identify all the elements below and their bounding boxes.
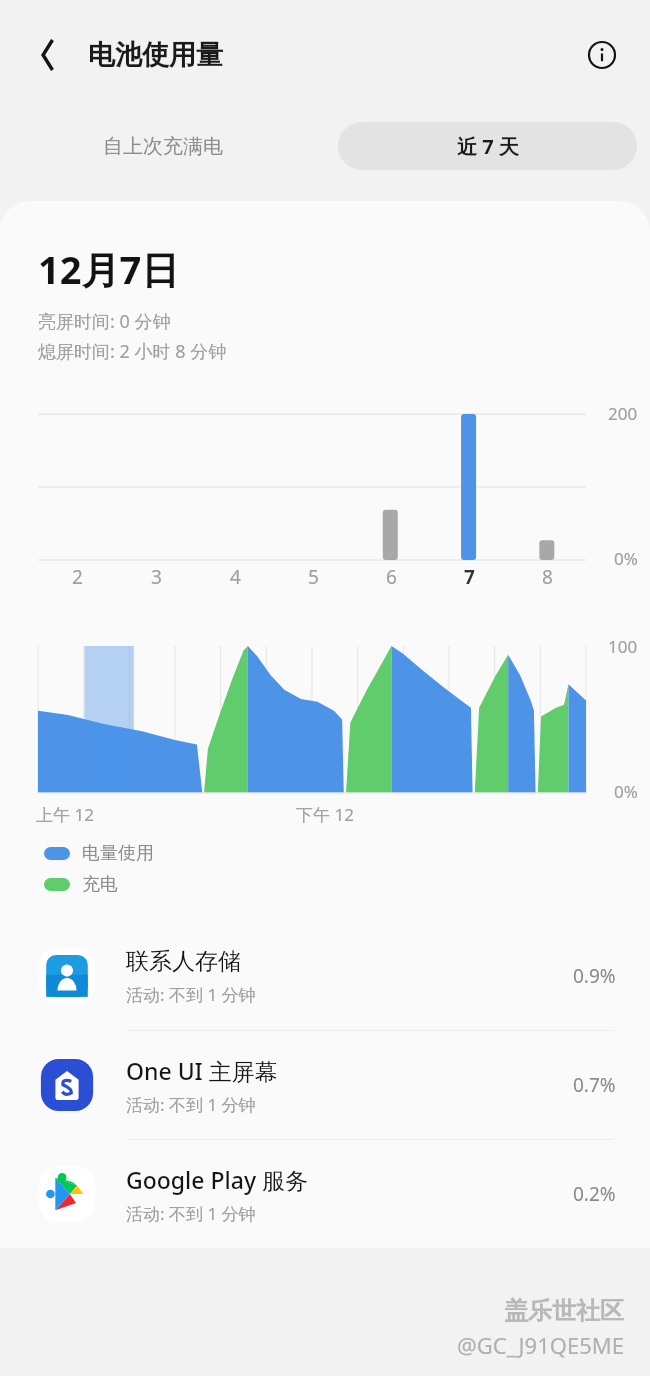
button[interactable]: Google Play 服务 xyxy=(0,1140,650,1248)
staticText: 8 xyxy=(542,564,553,590)
button[interactable]: 联系人存储 xyxy=(0,922,650,1030)
staticText: 0% xyxy=(614,780,638,803)
staticText: 200 xyxy=(608,402,638,425)
staticText: 自上次充满电 xyxy=(103,134,223,159)
staticText: 5 xyxy=(308,564,319,590)
staticText: 4 xyxy=(230,564,241,590)
staticText: 电量使用 xyxy=(82,842,154,865)
staticText: 3 xyxy=(151,564,162,590)
button[interactable]: One UI 主屏幕 xyxy=(0,1031,650,1139)
button[interactable]: 自上次充满电 xyxy=(0,110,325,182)
staticText: 0.9% xyxy=(573,963,616,989)
staticText: 近 7 天 xyxy=(457,133,519,160)
staticText: 7 xyxy=(464,564,475,590)
staticText: 盖乐世社区 xyxy=(504,1296,624,1326)
button[interactable]: Information xyxy=(576,29,628,81)
staticText: 活动: 不到 1 分钟 xyxy=(126,983,256,1006)
button[interactable]: Back xyxy=(22,29,74,81)
staticText: 6 xyxy=(386,564,397,590)
staticText: 亮屏时间: 0 分钟 xyxy=(38,309,171,334)
staticText: 2 xyxy=(72,564,83,590)
staticText: 活动: 不到 1 分钟 xyxy=(126,1202,256,1225)
staticText: 活动: 不到 1 分钟 xyxy=(126,1093,256,1116)
staticText: 0.7% xyxy=(573,1072,616,1098)
staticText: @GC_J91QE5ME xyxy=(457,1330,624,1360)
staticText: 0% xyxy=(614,547,638,570)
staticText: 下午 12 xyxy=(296,803,354,826)
button[interactable]: 近 7 天 xyxy=(338,122,637,170)
staticText: 0.2% xyxy=(573,1181,616,1207)
staticText: Google Play 服务 xyxy=(126,1164,308,1195)
staticText: 上午 12 xyxy=(36,803,94,826)
staticText: One UI 主屏幕 xyxy=(126,1055,278,1086)
staticText: 熄屏时间: 2 小时 8 分钟 xyxy=(38,339,227,364)
staticText: 100 xyxy=(608,635,638,658)
staticText: 联系人存储 xyxy=(126,947,241,976)
staticText: 充电 xyxy=(82,873,118,896)
staticText: 电池使用量 xyxy=(88,38,223,72)
staticText: 12月7日 xyxy=(38,243,180,295)
